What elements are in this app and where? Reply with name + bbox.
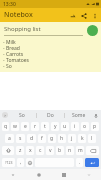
button[interactable]: Note colour [87,25,98,36]
staticText: w [13,123,17,130]
button[interactable]: k [78,134,86,143]
button[interactable]: More suggestions [2,112,8,118]
button[interactable]: a [5,134,14,143]
button[interactable]: Symbols [2,158,15,167]
button[interactable]: y [51,122,59,131]
staticText: 13:30 [3,1,16,8]
staticText: l [91,135,93,142]
button[interactable]: o [81,122,89,131]
staticText: - [3,63,5,69]
staticText: m [78,147,83,154]
button[interactable]: n [66,146,74,155]
staticText: - [3,57,5,63]
button[interactable]: Backspace [86,146,99,155]
button[interactable]: l [88,134,96,143]
staticText: Carrots [6,51,24,57]
staticText: z [19,147,22,154]
button[interactable]: m [76,146,84,155]
button[interactable]: s [16,134,25,143]
staticText: i [74,123,76,130]
button[interactable]: Home [26,169,51,180]
staticText: j [71,135,73,142]
staticText: v [49,147,52,154]
staticText: q [4,123,8,130]
staticText: u [63,123,67,130]
button[interactable]: x [26,146,34,155]
staticText: So [19,112,25,119]
staticText: d [30,135,34,142]
staticText: , [20,159,22,166]
staticText: n [68,147,72,154]
button[interactable]: Enter [85,158,99,167]
button[interactable]: g [48,134,56,143]
staticText: s [19,135,22,142]
button[interactable]: Share [78,10,89,21]
button[interactable]: q [2,122,9,131]
staticText: Bread [6,45,20,51]
staticText: b [58,147,62,154]
staticText: So [6,63,12,69]
staticText: Some [72,112,86,119]
staticText: Milk [6,39,16,45]
button[interactable]: Hide keyboard [0,169,26,180]
button[interactable]: j [68,134,76,143]
button[interactable]: b [56,146,64,155]
staticText: Notebox [4,10,33,20]
staticText: o [83,123,87,130]
button[interactable]: Emoji [26,158,33,167]
staticText: - [3,51,5,57]
button[interactable]: d [27,134,36,143]
staticText: g [50,135,54,142]
button[interactable]: Some [65,110,92,120]
button[interactable]: . [76,158,83,167]
button[interactable]: h [58,134,66,143]
staticText: y [54,123,57,130]
staticText: Do [47,112,54,119]
staticText: a [8,135,11,142]
button[interactable]: w [11,122,19,131]
button[interactable]: Redo [67,10,78,21]
staticText: - [3,45,5,51]
button[interactable]: t [41,122,49,131]
button[interactable]: r [31,122,39,131]
staticText: h [60,135,64,142]
staticText: . [79,159,81,166]
staticText: p [93,123,97,130]
button[interactable]: c [36,146,44,155]
button[interactable]: So [8,110,36,120]
staticText: > [4,113,7,118]
staticText: Shopping list [4,25,41,33]
button[interactable]: z [16,146,24,155]
button[interactable]: Recents [51,169,76,180]
staticText: c [39,147,42,154]
button[interactable]: More options [89,10,100,21]
button[interactable]: u [61,122,69,131]
staticText: r [34,123,37,130]
button[interactable]: v [46,146,54,155]
button[interactable]: p [91,122,99,131]
staticText: e [24,123,27,130]
button[interactable]: , [17,158,24,167]
button[interactable]: i [71,122,79,131]
staticText: x [29,147,32,154]
button[interactable]: e [21,122,29,131]
staticText: k [81,135,84,142]
staticText: f [41,135,43,142]
button[interactable]: Do [37,110,64,120]
button[interactable]: f [38,134,46,143]
staticText: t [44,123,46,130]
staticText: ?123 [5,160,13,165]
button[interactable]: Voice input [92,112,99,119]
staticText: Tomatoes [6,57,29,63]
staticText: - [3,39,5,45]
button[interactable]: Shift [2,146,14,155]
